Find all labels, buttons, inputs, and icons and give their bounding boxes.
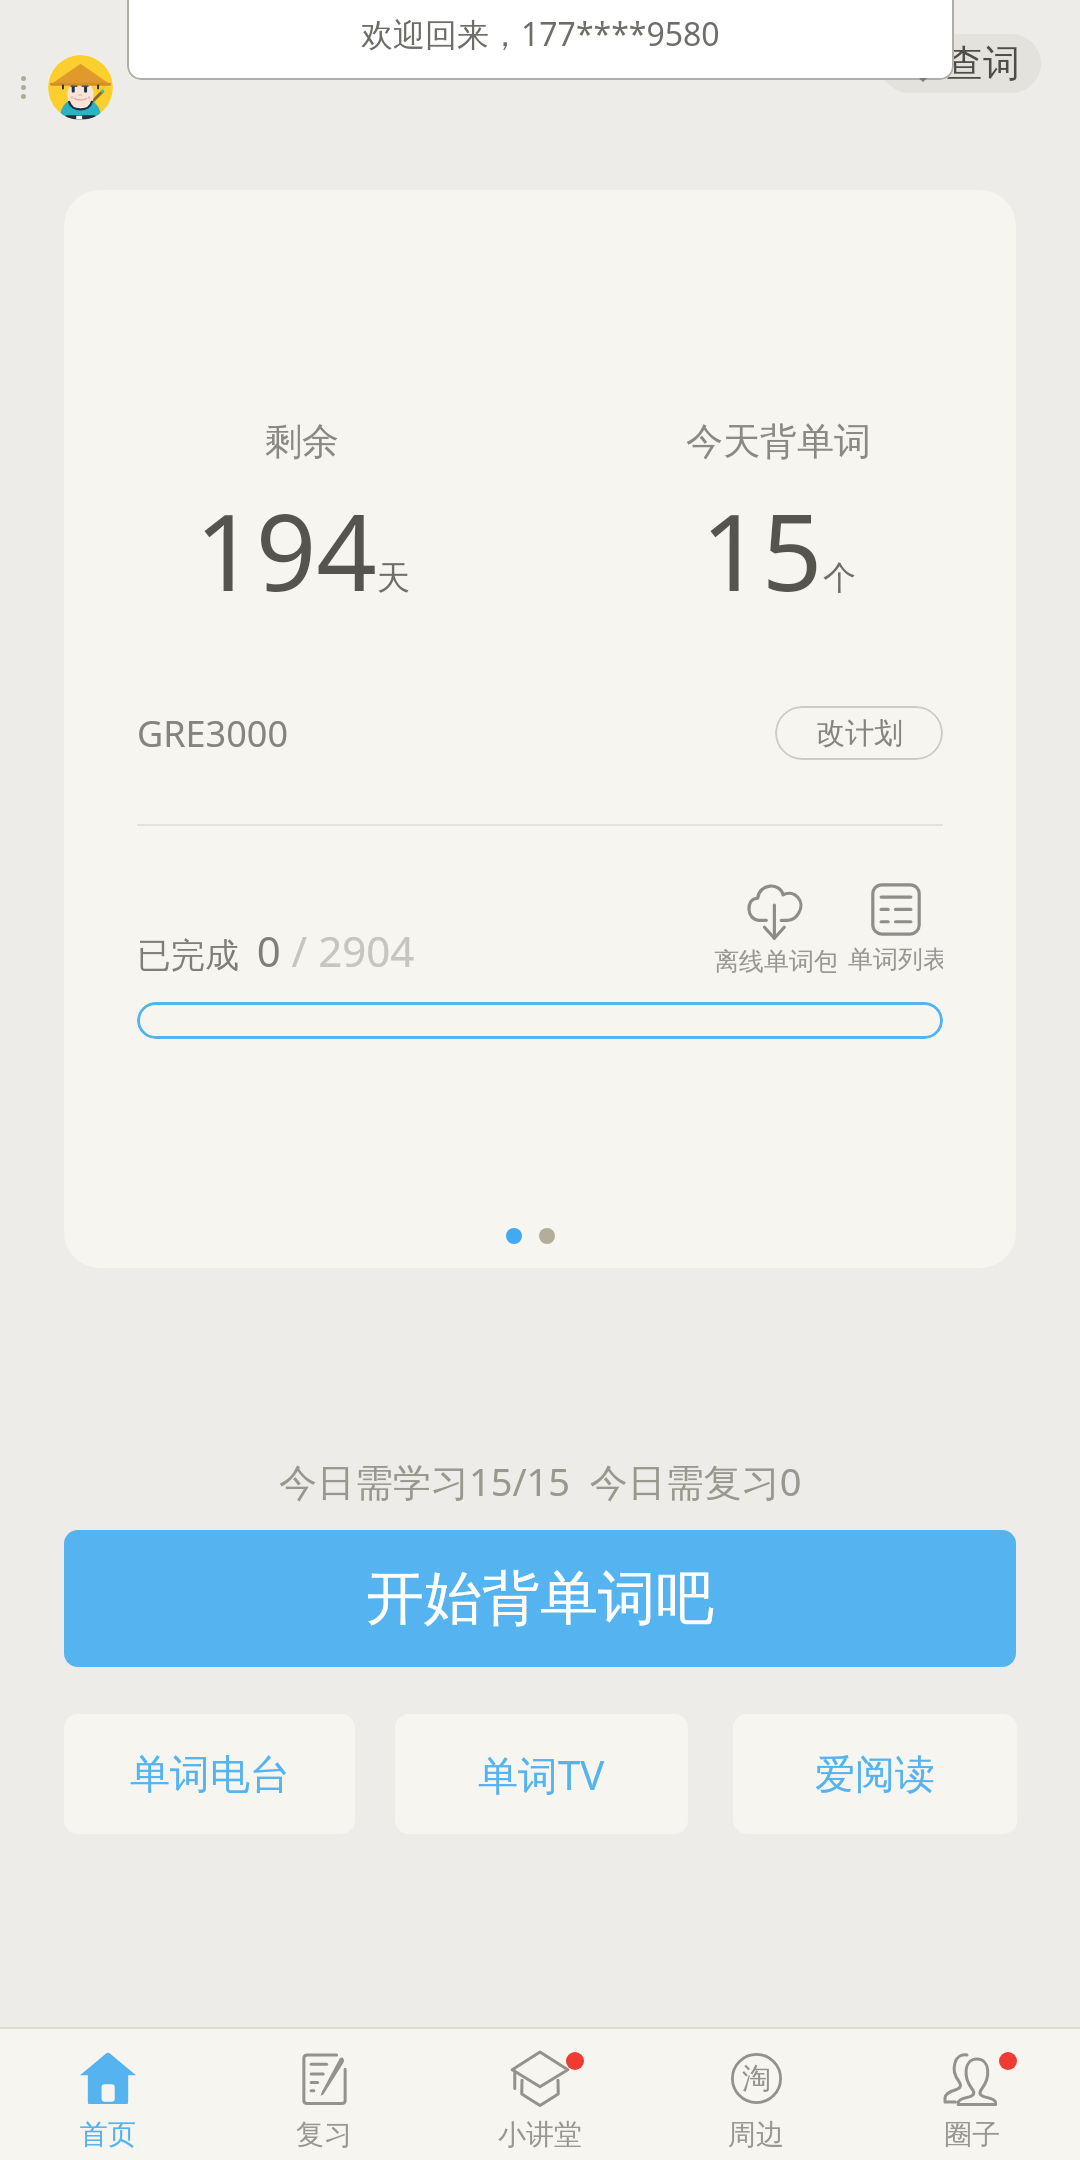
- staticText: 今日需学习15/15 今日需复习0: [279, 1455, 802, 1507]
- staticText: 淘: [742, 2060, 771, 2097]
- staticText: 周边: [728, 2117, 784, 2152]
- staticText: 首页: [80, 2117, 136, 2152]
- button[interactable]: 离线单词包: [714, 882, 836, 977]
- staticText: GRE3000: [137, 709, 288, 758]
- staticText: 查词: [946, 40, 1020, 87]
- staticText: 开始背单词吧: [366, 1562, 714, 1635]
- button[interactable]: 查词: [880, 34, 1041, 93]
- button[interactable]: 单词TV: [395, 1714, 688, 1834]
- button[interactable]: Profile: [48, 55, 113, 120]
- staticText: 剩余: [265, 418, 339, 465]
- button[interactable]: 爱阅读: [733, 1714, 1017, 1834]
- staticText: 已完成 0 / 2904: [137, 922, 415, 979]
- button[interactable]: 小讲堂: [432, 2029, 648, 2160]
- button[interactable]: 单词列表: [848, 882, 943, 975]
- button[interactable]: 复习: [216, 2029, 432, 2160]
- staticText: 天: [377, 557, 410, 599]
- staticText: 复习: [296, 2117, 352, 2152]
- staticText: 欢迎回来，177****9580: [361, 12, 720, 56]
- staticText: 单词TV: [478, 1747, 605, 1802]
- staticText: 小讲堂: [498, 2117, 582, 2152]
- button[interactable]: 单词电台: [64, 1714, 355, 1834]
- staticText: 圈子: [944, 2117, 1000, 2152]
- staticText: 194: [195, 478, 377, 622]
- button[interactable]: 开始背单词吧: [64, 1530, 1016, 1667]
- staticText: 离线单词包: [714, 946, 836, 977]
- button[interactable]: 首页: [0, 2029, 216, 2160]
- staticText: 爱阅读: [815, 1749, 935, 1799]
- button[interactable]: 改计划: [775, 706, 943, 760]
- button[interactable]: 圈子: [864, 2029, 1080, 2160]
- button[interactable]: 淘: [648, 2029, 864, 2160]
- staticText: 15: [701, 478, 823, 622]
- staticText: 个: [823, 557, 856, 599]
- staticText: 今天背单词: [686, 418, 871, 465]
- staticText: 改计划: [816, 715, 903, 752]
- staticText: 单词电台: [130, 1749, 290, 1799]
- staticText: 单词列表: [848, 944, 943, 975]
- button[interactable]: More options: [14, 64, 32, 110]
